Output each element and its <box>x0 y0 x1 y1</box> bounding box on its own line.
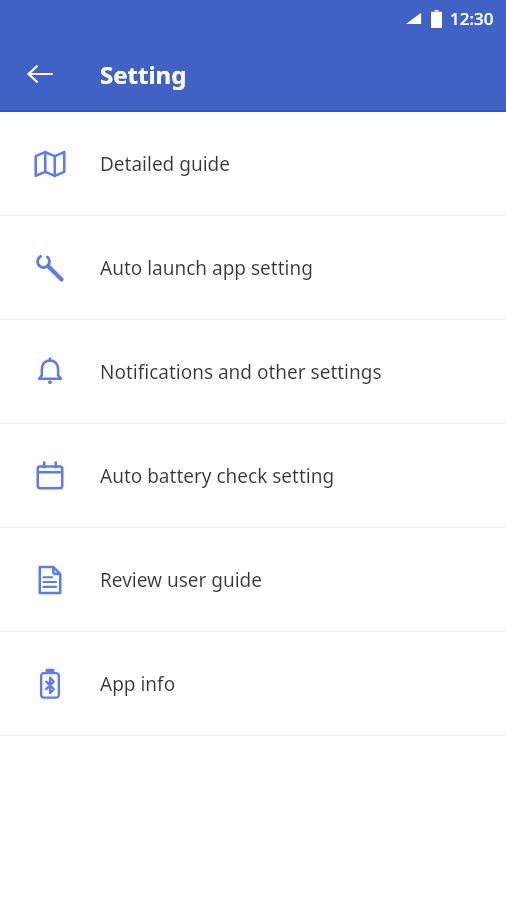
staticText: Notifications and other settings <box>100 359 382 385</box>
button[interactable]: Auto launch app setting <box>0 216 506 319</box>
button[interactable]: Review user guide <box>0 528 506 631</box>
staticText: Review user guide <box>100 567 262 593</box>
staticText: Setting <box>100 58 187 91</box>
button[interactable]: Detailed guide <box>0 112 506 215</box>
staticText: Auto battery check setting <box>100 463 335 489</box>
staticText: 12:30 <box>450 7 494 30</box>
button[interactable]: Auto battery check setting <box>0 424 506 527</box>
staticText: Detailed guide <box>100 151 230 177</box>
staticText: Auto launch app setting <box>100 255 313 281</box>
staticText: App info <box>100 671 176 697</box>
button[interactable]: App info <box>0 632 506 735</box>
button[interactable]: Notifications and other settings <box>0 320 506 423</box>
button[interactable]: Back <box>16 50 64 98</box>
